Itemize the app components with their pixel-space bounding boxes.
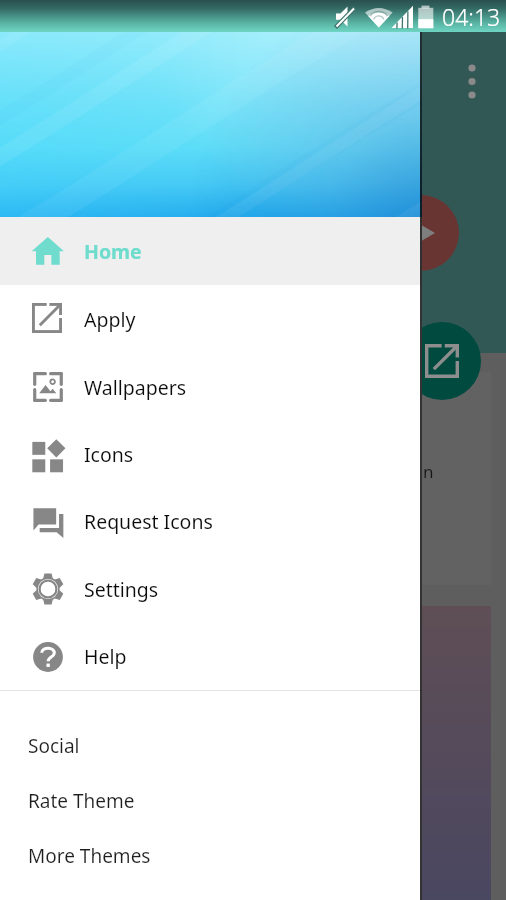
staticText: Apply [84, 306, 136, 333]
button[interactable]: Home [0, 217, 422, 285]
button[interactable]: Social [0, 718, 422, 773]
staticText: More Themes [28, 843, 151, 869]
button[interactable]: Help [0, 623, 422, 690]
button[interactable]: Apply [403, 322, 481, 400]
button[interactable]: Apply [0, 285, 422, 353]
staticText: Icons [84, 441, 134, 468]
staticText: Help [84, 643, 127, 670]
button[interactable]: Request Icons [0, 488, 422, 555]
staticText: Home [84, 238, 142, 265]
staticText: Rate Theme [28, 788, 135, 814]
button[interactable]: Icons [0, 421, 422, 488]
staticText: Social [28, 733, 80, 759]
button[interactable]: Settings [0, 555, 422, 623]
staticText: Wallpapers [84, 374, 187, 401]
staticText: Request Icons [84, 508, 213, 535]
staticText: Settings [84, 576, 159, 603]
staticText: 04:13 [442, 1, 501, 32]
staticText: Description [342, 460, 434, 483]
button[interactable]: Rate Theme [0, 773, 422, 828]
button[interactable]: Wallpapers [0, 353, 422, 421]
button[interactable]: More Themes [0, 828, 422, 883]
